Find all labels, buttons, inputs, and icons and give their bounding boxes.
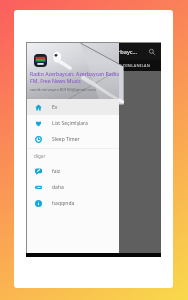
staticText: Radio Azerbaycan: Azerbaycan Radio [30,70,120,77]
staticText: faiz [52,168,61,175]
button[interactable]: haqqında [27,195,119,211]
staticText: digar [34,153,46,159]
staticText: rbayc... [118,48,137,56]
button[interactable]: Ev [27,99,119,115]
button[interactable]: faiz [27,163,119,179]
button[interactable]: Search [147,47,157,57]
staticText: FM, Free News Music [30,77,81,84]
staticText: daha [52,184,64,191]
staticText: List Seçimlşlara [52,120,88,127]
button[interactable]: Sleep Timer [27,131,119,147]
button[interactable]: daha [27,179,119,195]
staticText: Sleep Timer [52,136,80,143]
button[interactable]: List Seçimlşlara [27,115,119,131]
button[interactable]: X DINLANILAN [27,60,161,71]
staticText: haqqında [52,200,75,207]
staticText: Ev [52,104,58,111]
staticText: X DINLANILAN [119,63,151,69]
staticText: cavid.mirzeyev.80160@gmail.com [30,87,97,93]
